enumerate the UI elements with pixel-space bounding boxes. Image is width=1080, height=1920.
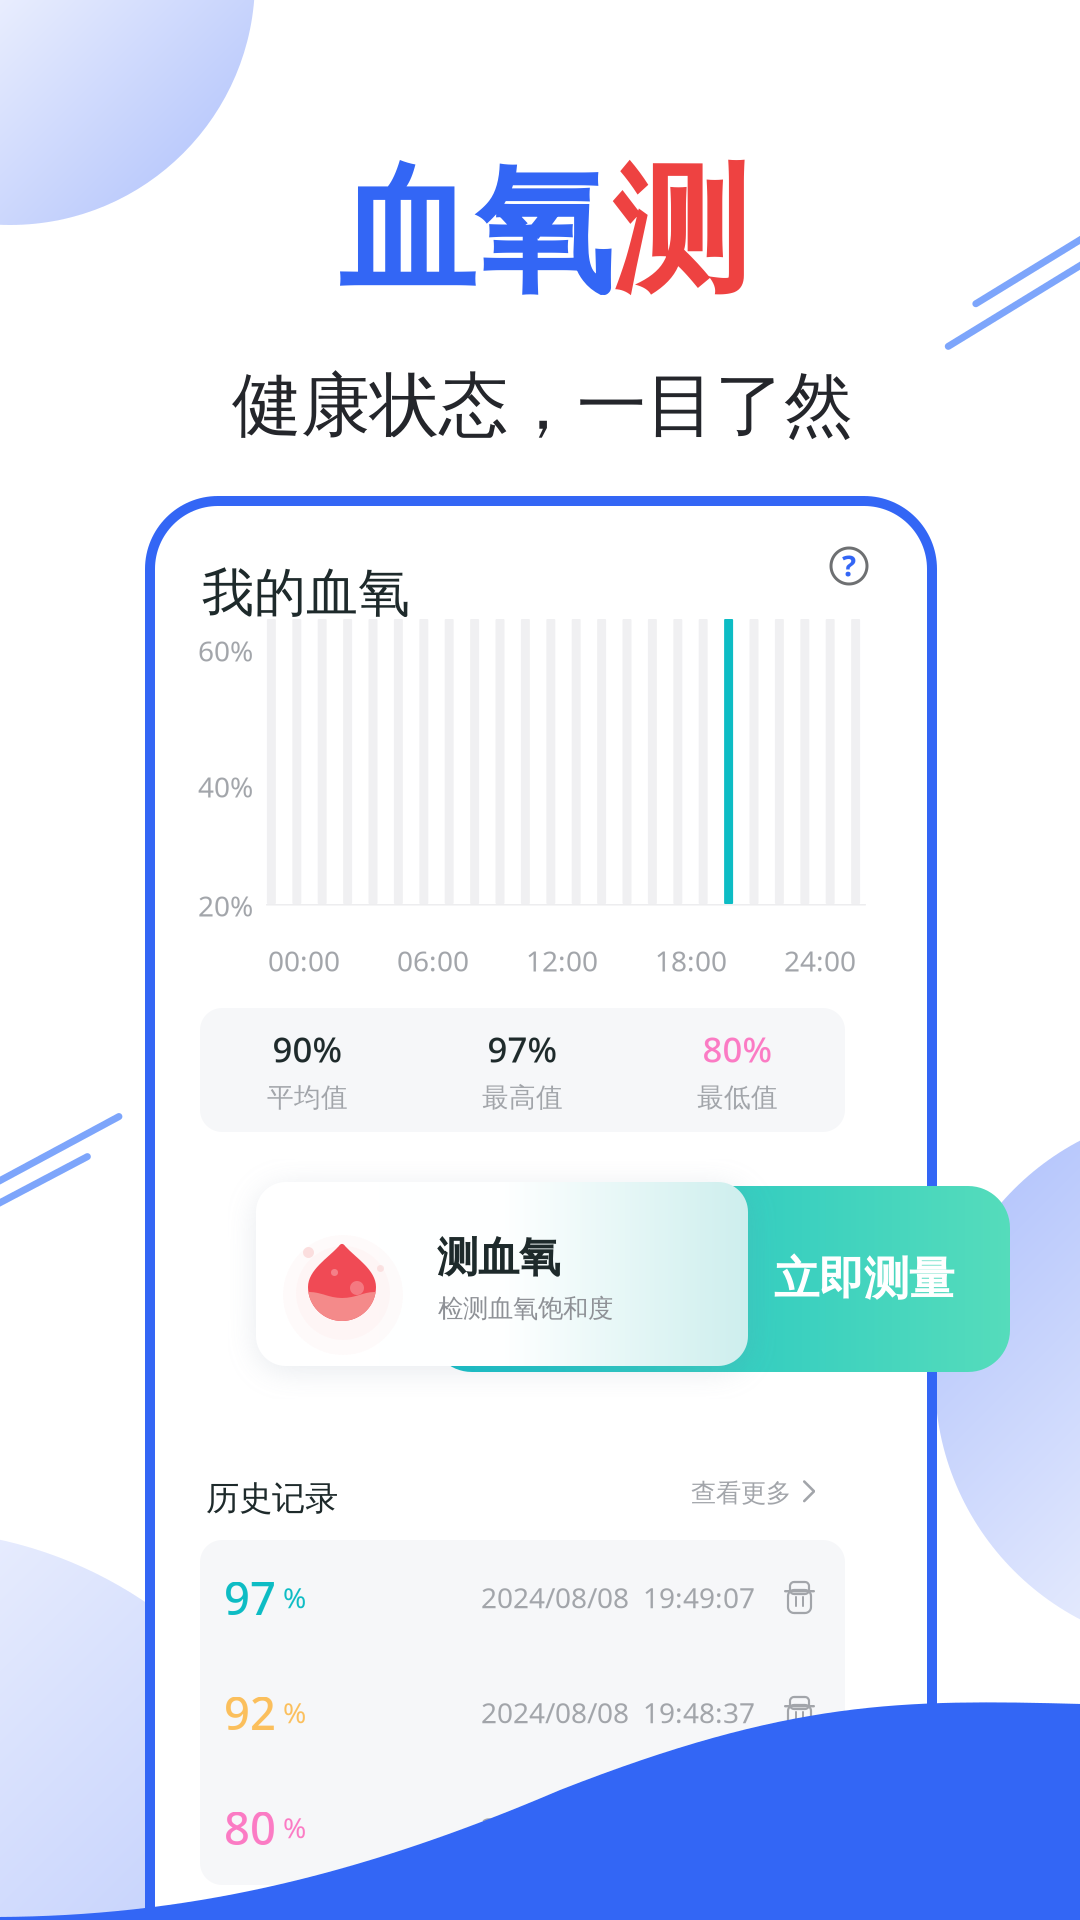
staticText: 血氧 [338, 147, 612, 316]
button[interactable]: 立即测量 [256, 1182, 1012, 1376]
staticText: 80 [224, 1797, 276, 1858]
staticText: 24:00 [784, 942, 856, 979]
staticText: 测血氧 [437, 1232, 560, 1283]
button[interactable]: 97 [200, 1540, 845, 1655]
staticText: 测 [612, 147, 749, 316]
staticText: 平均值 [267, 1081, 348, 1114]
button[interactable]: 查看更多 [691, 1473, 816, 1513]
staticText: % [276, 1694, 306, 1731]
staticText: 检测血氧饱和度 [438, 1293, 613, 1324]
staticText: 06:00 [397, 942, 469, 979]
button[interactable]: 帮助 [820, 537, 878, 595]
staticText: 2024/08/08 19:48:07 [481, 1809, 755, 1846]
staticText: 60% [198, 632, 253, 669]
staticText: 00:00 [268, 942, 340, 979]
staticText: 最低值 [697, 1081, 778, 1114]
staticText: 查看更多 [691, 1477, 791, 1508]
button[interactable]: 80 [200, 1770, 845, 1885]
staticText: 18:00 [655, 942, 727, 979]
staticText: ? [842, 545, 856, 584]
staticText: 2024/08/08 19:49:07 [481, 1579, 755, 1616]
button[interactable]: 92 [200, 1655, 845, 1770]
staticText: 12:00 [526, 942, 598, 979]
staticText: 我的血氧 [202, 561, 410, 625]
staticText: 历史记录 [206, 1478, 338, 1519]
staticText: % [276, 1579, 306, 1616]
staticText: 立即测量 [774, 1251, 954, 1307]
staticText: 80% [702, 1026, 772, 1072]
staticText: 2024/08/08 19:48:37 [481, 1694, 755, 1731]
staticText: % [276, 1809, 306, 1846]
staticText: 20% [198, 887, 253, 924]
staticText: 97 [224, 1567, 276, 1628]
staticText: 97% [487, 1026, 557, 1072]
staticText: 90% [272, 1026, 342, 1072]
staticText: 92 [224, 1682, 276, 1743]
staticText: 最高值 [482, 1081, 563, 1114]
staticText: 40% [198, 768, 253, 805]
staticText: 健康状态，一目了然 [232, 363, 853, 448]
